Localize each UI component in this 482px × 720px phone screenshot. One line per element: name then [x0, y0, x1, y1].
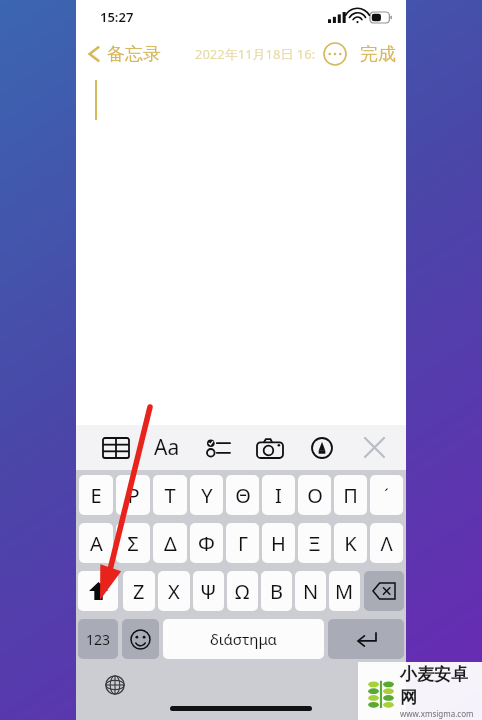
staticText: 备忘录	[107, 43, 161, 66]
staticText: Ρ	[127, 482, 140, 509]
staticText: Ω	[235, 578, 250, 605]
button[interactable]: Λ	[370, 523, 403, 563]
button[interactable]: Ω	[227, 571, 258, 611]
button[interactable]: ´	[370, 475, 403, 515]
button[interactable]: Τ	[153, 475, 187, 515]
button[interactable]: Shift	[78, 571, 118, 611]
button[interactable]: Α	[79, 523, 113, 563]
staticText: Η	[271, 530, 286, 557]
staticText: 15:27	[100, 8, 134, 26]
button[interactable]: Ρ	[116, 475, 150, 515]
staticText: www.xmsigma.com	[400, 708, 474, 719]
staticText: Ι	[275, 482, 282, 509]
button[interactable]: Text format	[141, 425, 192, 470]
staticText: Κ	[344, 530, 357, 557]
button[interactable]: Φ	[190, 523, 223, 563]
button[interactable]: 备忘录	[84, 42, 161, 66]
button[interactable]: Ο	[298, 475, 331, 515]
staticText: Σ	[127, 530, 139, 557]
button[interactable]: Β	[261, 571, 292, 611]
staticText: Φ	[198, 530, 215, 557]
staticText: Aa	[154, 433, 180, 462]
button[interactable]: Ζ	[123, 571, 155, 611]
button[interactable]: Γ	[226, 523, 259, 563]
staticText: 2022年11月18日 16:	[195, 45, 316, 63]
staticText: Γ	[238, 530, 248, 557]
button[interactable]: Ψ	[193, 571, 224, 611]
button[interactable]: Η	[262, 523, 295, 563]
button[interactable]: Κ	[334, 523, 367, 563]
button[interactable]: Table	[90, 425, 141, 470]
button[interactable]: Ε	[79, 475, 113, 515]
button[interactable]: Backspace	[364, 571, 404, 611]
staticText: Λ	[380, 530, 393, 557]
button[interactable]: Return	[328, 619, 404, 659]
button[interactable]: Emoji	[122, 619, 159, 659]
button[interactable]: Θ	[226, 475, 259, 515]
staticText: 123	[86, 630, 111, 649]
button[interactable]: Χ	[158, 571, 190, 611]
button[interactable]: Σ	[116, 523, 150, 563]
staticText: ´	[384, 484, 389, 506]
button[interactable]: Change keyboard	[102, 672, 128, 698]
button[interactable]: Υ	[190, 475, 223, 515]
staticText: Α	[90, 530, 103, 557]
button[interactable]: διάστημα	[163, 619, 324, 659]
staticText: Χ	[168, 578, 180, 605]
button[interactable]: Μ	[329, 571, 360, 611]
button[interactable]: Ι	[262, 475, 295, 515]
staticText: Θ	[235, 482, 251, 509]
staticText: Ζ	[133, 578, 145, 605]
button[interactable]: Markup	[296, 425, 348, 470]
button[interactable]: Close	[348, 425, 400, 470]
staticText: 完成	[360, 43, 396, 66]
button[interactable]: 123	[78, 619, 118, 659]
staticText: Τ	[164, 482, 176, 509]
staticText: Β	[270, 578, 283, 605]
staticText: Π	[343, 482, 358, 509]
staticText: Δ	[164, 530, 177, 557]
staticText: Ξ	[308, 530, 321, 557]
staticText: Μ	[335, 578, 354, 605]
button[interactable]: Δ	[153, 523, 187, 563]
button[interactable]: Ξ	[298, 523, 331, 563]
button[interactable]: Camera	[244, 425, 296, 470]
staticText: Ε	[90, 482, 102, 509]
button[interactable]: Ν	[295, 571, 326, 611]
staticText: διάστημα	[210, 629, 277, 649]
staticText: Ν	[303, 578, 319, 605]
button[interactable]: More options	[320, 39, 350, 69]
button[interactable]: Π	[334, 475, 367, 515]
staticText: 小麦安卓网	[400, 664, 482, 708]
staticText: Ο	[307, 482, 323, 509]
staticText: Υ	[201, 482, 213, 509]
button[interactable]: Checklist	[192, 425, 244, 470]
staticText: Ψ	[200, 578, 217, 605]
button[interactable]: 完成	[360, 43, 396, 66]
